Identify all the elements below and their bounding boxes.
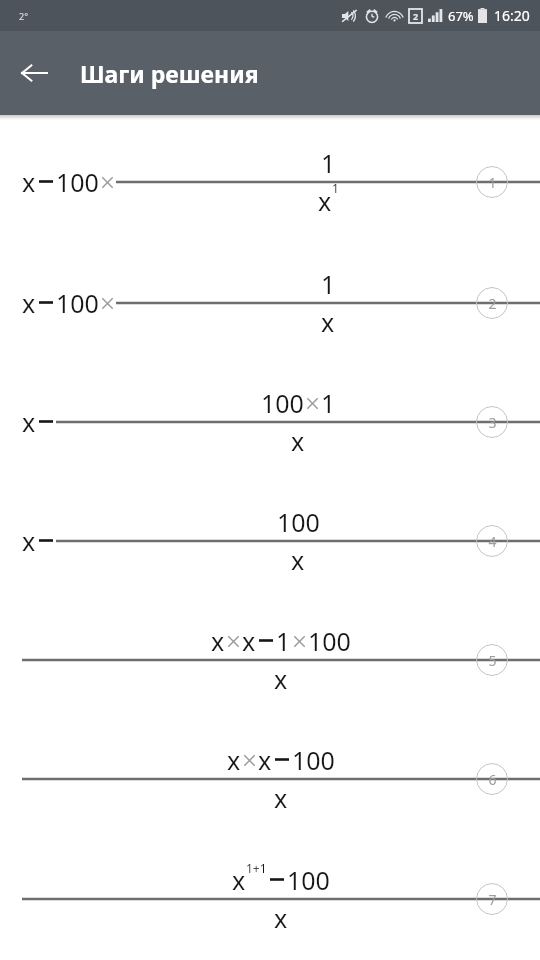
button[interactable]: x (0, 719, 540, 838)
staticText: 16:20 (494, 6, 530, 25)
staticText: 100 (56, 286, 99, 320)
staticText: 1 (332, 180, 339, 196)
staticText: x (211, 624, 225, 658)
staticText: x (242, 624, 256, 658)
staticText: 1 (321, 267, 336, 301)
button[interactable]: x (0, 600, 540, 719)
staticText: 100 (277, 505, 320, 539)
staticText: 4 (488, 532, 497, 551)
staticText: x (22, 286, 36, 320)
button[interactable]: x (0, 120, 540, 243)
staticText: 2 (488, 294, 497, 313)
staticText: 1 (276, 624, 291, 658)
staticText: 1 (488, 173, 497, 192)
staticText: 100 (287, 863, 330, 897)
staticText: 67% (448, 7, 474, 25)
button[interactable]: x (0, 481, 540, 600)
staticText: x (318, 184, 332, 218)
staticText: 100 (292, 743, 335, 777)
staticText: x (227, 743, 241, 777)
staticText: x (274, 901, 288, 935)
staticText: 6 (488, 770, 497, 789)
button[interactable]: x (0, 243, 540, 362)
staticText: 100 (261, 386, 304, 420)
staticText: x (321, 305, 335, 339)
button[interactable]: x (0, 838, 540, 960)
staticText: 1 (321, 386, 336, 420)
staticText: 100 (308, 624, 351, 658)
staticText: x (274, 662, 288, 696)
staticText: x (22, 165, 36, 199)
staticText: x (232, 863, 246, 897)
staticText: 2° (19, 10, 29, 22)
staticText: 1 (321, 146, 336, 180)
staticText: 3 (488, 413, 497, 432)
button[interactable]: x (0, 362, 540, 481)
staticText: x (258, 743, 272, 777)
button[interactable]: Back (10, 49, 58, 97)
staticText: x (274, 781, 288, 815)
staticText: 1+1 (246, 860, 267, 876)
staticText: x (291, 543, 305, 577)
staticText: x (291, 424, 305, 458)
staticText: 100 (56, 165, 99, 199)
staticText: x (22, 405, 36, 439)
staticText: 7 (488, 890, 497, 909)
staticText: 2 (413, 10, 419, 22)
staticText: x (22, 524, 36, 558)
staticText: Шаги решения (80, 58, 259, 89)
staticText: 5 (488, 651, 497, 670)
